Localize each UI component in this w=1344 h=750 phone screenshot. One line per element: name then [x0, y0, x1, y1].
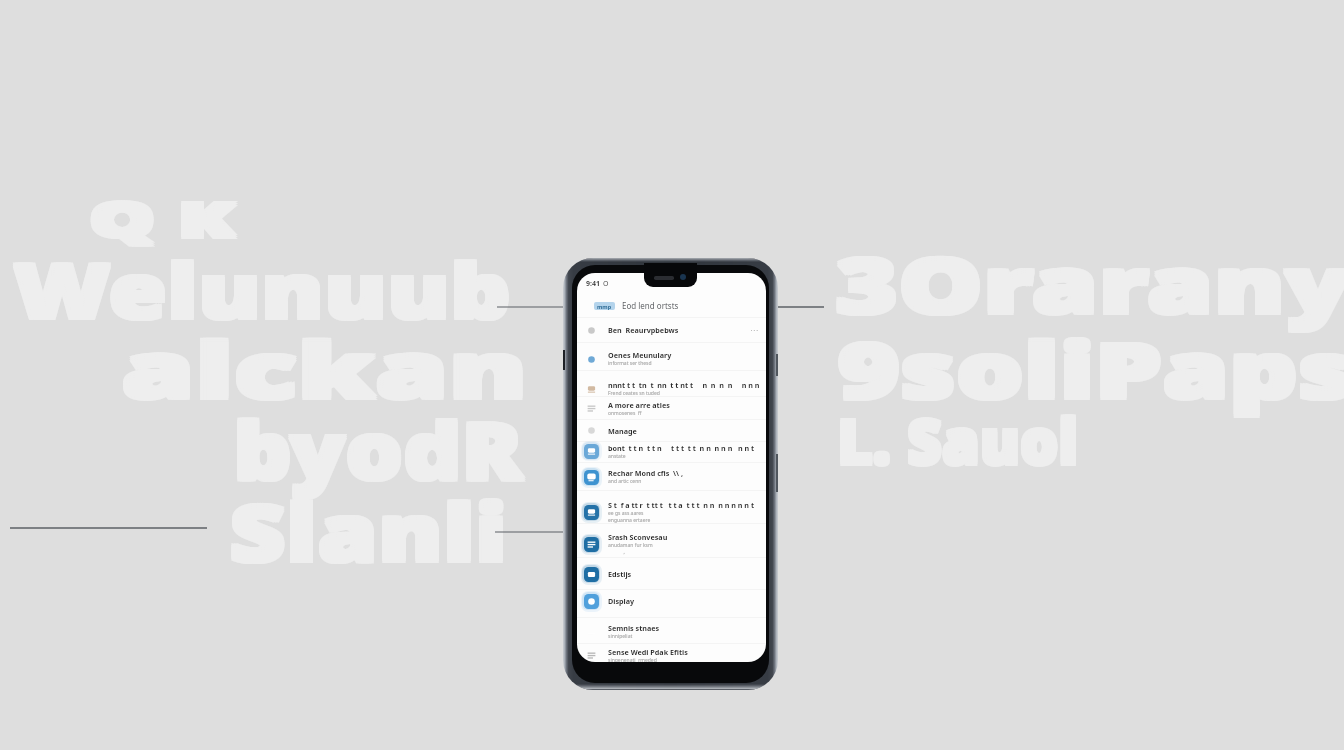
- staticText: 3Orarany: [839, 234, 1344, 338]
- staticText: informat ser thesd: [608, 360, 652, 367]
- staticText: ,: [608, 549, 625, 556]
- staticText: L. Sauol: [836, 400, 1077, 484]
- staticText: 3Orarany: [833, 232, 1344, 336]
- button[interactable]: Srash Sconvesau: [577, 524, 766, 557]
- staticText: Welunuub: [14, 240, 512, 342]
- staticText: 9:41: [586, 279, 600, 289]
- button[interactable]: mmp: [577, 294, 766, 317]
- staticText: Q K: [93, 188, 240, 253]
- button[interactable]: More options: [746, 322, 762, 338]
- staticText: nnnt t t tn t nn t t nt t n n n n n n n: [608, 380, 760, 390]
- staticText: alckan: [119, 315, 526, 419]
- staticText: 9soliPaps: [838, 317, 1344, 421]
- staticText: 3Orarany: [839, 232, 1344, 336]
- button[interactable]: Ben Reaurvpbebws: [577, 318, 766, 342]
- staticText: singenenati rmeded: [608, 657, 657, 662]
- staticText: anudaman fur ksm: [608, 542, 653, 549]
- staticText: Slanli: [230, 480, 508, 586]
- button[interactable]: Oenes Meunulary: [577, 343, 766, 370]
- staticText: 9soliPaps: [841, 317, 1344, 421]
- button[interactable]: Display: [577, 590, 766, 617]
- staticText: Ben Reaurvpbebws: [608, 325, 679, 335]
- staticText: byodR: [236, 396, 526, 502]
- staticText: Welunuub: [16, 238, 515, 340]
- staticText: byodR: [232, 398, 521, 504]
- staticText: L. Sauol: [840, 400, 1081, 484]
- staticText: 9soliPaps: [838, 319, 1344, 423]
- staticText: 3Orarany: [836, 230, 1344, 334]
- staticText: Slanli: [228, 476, 506, 582]
- staticText: byodR: [232, 396, 521, 502]
- staticText: ⋯: [750, 326, 758, 335]
- button[interactable]: Sense Wedi Pdak Efitis: [577, 644, 766, 662]
- staticText: Oenes Meunulary: [608, 350, 672, 360]
- staticText: Slanli: [228, 478, 506, 584]
- button[interactable]: Rechar Mond cfis \\ ,: [577, 463, 766, 490]
- staticText: anstate: [608, 453, 626, 460]
- staticText: L. Sauol: [838, 400, 1079, 484]
- staticText: alckan: [119, 319, 526, 423]
- staticText: sinnipeliat: [608, 633, 633, 640]
- button[interactable]: S t f a tt r t tt t t t a t t t n n n n …: [577, 491, 766, 523]
- staticText: Slanli: [232, 480, 511, 586]
- button[interactable]: nnnt t t tn t nn t t nt t n n n n n n n: [577, 371, 766, 396]
- staticText: alckan: [122, 315, 529, 419]
- staticText: alckan: [122, 317, 529, 421]
- staticText: Welunuub: [16, 240, 515, 342]
- staticText: 3Orarany: [833, 234, 1344, 338]
- staticText: alckan: [125, 315, 532, 419]
- staticText: 9soliPaps: [838, 315, 1344, 419]
- button[interactable]: Edstijs: [577, 558, 766, 589]
- staticText: byodR: [232, 394, 521, 500]
- staticText: alckan: [122, 319, 529, 423]
- staticText: Rechar Mond cfis \\ ,: [608, 468, 683, 478]
- staticText: L. Sauol: [840, 398, 1081, 482]
- button[interactable]: bont t t n t t n t t t t t n n n n n n n…: [577, 442, 766, 462]
- staticText: Manage: [608, 426, 637, 436]
- staticText: bont t t n t t n t t t t t n n n n n n n…: [608, 443, 755, 453]
- staticText: mmp: [597, 303, 612, 310]
- staticText: Q K: [93, 186, 240, 251]
- staticText: Q K: [87, 184, 233, 249]
- staticText: Welunuub: [11, 240, 510, 342]
- staticText: Q K: [87, 188, 233, 253]
- staticText: 3Orarany: [839, 230, 1344, 334]
- staticText: enguanna ertaere: [608, 517, 651, 524]
- staticText: Welunuub: [16, 236, 515, 338]
- staticText: byodR: [234, 396, 524, 502]
- staticText: Welunuub: [11, 238, 510, 340]
- staticText: alckan: [119, 317, 526, 421]
- staticText: 3Orarany: [836, 232, 1344, 336]
- staticText: L. Sauol: [836, 396, 1077, 480]
- staticText: 3Orarany: [833, 230, 1344, 334]
- staticText: Q K: [90, 184, 236, 249]
- staticText: 3Orarany: [836, 234, 1344, 338]
- staticText: byodR: [236, 398, 526, 504]
- staticText: Slanli: [232, 476, 511, 582]
- button[interactable]: Semnis stnaes: [577, 618, 766, 643]
- staticText: O: [603, 279, 609, 289]
- staticText: Sense Wedi Pdak Efitis: [608, 647, 688, 657]
- staticText: A more arre atles: [608, 400, 670, 410]
- staticText: 9soliPaps: [835, 317, 1344, 421]
- staticText: Frend ceates sn tuded: [608, 390, 660, 397]
- staticText: Q K: [87, 186, 233, 251]
- staticText: byodR: [234, 394, 524, 500]
- staticText: ee gs ass aares: [608, 510, 644, 517]
- staticText: S t f a tt r t tt t t t a t t t n n n n …: [608, 500, 755, 510]
- staticText: Slanli: [230, 478, 508, 584]
- button[interactable]: Manage: [577, 420, 766, 441]
- staticText: Q K: [90, 186, 236, 251]
- staticText: Welunuub: [14, 236, 512, 338]
- staticText: Srash Sconvesau: [608, 532, 668, 542]
- staticText: L. Sauol: [836, 398, 1077, 482]
- staticText: Welunuub: [11, 236, 510, 338]
- staticText: Q K: [93, 184, 240, 249]
- staticText: Eod lend ortsts: [622, 300, 679, 311]
- button[interactable]: A more arre atles: [577, 397, 766, 419]
- staticText: byodR: [236, 394, 526, 500]
- staticText: 9soliPaps: [841, 319, 1344, 423]
- staticText: Slanli: [228, 480, 506, 586]
